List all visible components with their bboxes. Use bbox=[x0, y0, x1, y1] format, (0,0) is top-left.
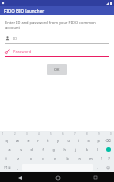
staticText: u bbox=[67, 138, 70, 143]
button[interactable]: i bbox=[73, 137, 83, 144]
other: Enter bbox=[106, 147, 111, 152]
button[interactable]: ?1① bbox=[1, 164, 13, 171]
staticText: b bbox=[66, 156, 69, 161]
staticText: 9 bbox=[98, 132, 100, 136]
button[interactable]: ! bbox=[97, 155, 105, 162]
staticText: k bbox=[86, 147, 88, 152]
staticText: t bbox=[47, 138, 49, 143]
staticText: h bbox=[63, 147, 66, 152]
staticText: f bbox=[42, 147, 44, 152]
staticText: y bbox=[57, 138, 59, 143]
staticText: e bbox=[27, 138, 30, 143]
button[interactable]: z bbox=[11, 155, 24, 162]
staticText: 0 bbox=[110, 132, 112, 136]
button[interactable]: s bbox=[15, 146, 26, 153]
staticText: 8 bbox=[86, 132, 88, 136]
staticText: x bbox=[30, 156, 32, 161]
staticText: n bbox=[78, 156, 81, 161]
button[interactable]: p bbox=[93, 137, 103, 144]
button[interactable]: d bbox=[26, 146, 37, 153]
button[interactable]: ⇧ bbox=[1, 155, 11, 162]
staticText: ?1① bbox=[4, 165, 11, 170]
staticText: m bbox=[89, 156, 93, 161]
staticText: ⌫ bbox=[105, 139, 111, 143]
staticText: 2 bbox=[14, 132, 16, 136]
staticText: , bbox=[17, 165, 18, 170]
button[interactable]: w bbox=[12, 137, 23, 144]
button[interactable]: q bbox=[1, 137, 12, 144]
button[interactable]: j bbox=[70, 146, 81, 153]
button[interactable]: , bbox=[13, 164, 22, 171]
button[interactable]: o bbox=[83, 137, 93, 144]
staticText: Enter ID and password from your FIDO com… bbox=[5, 20, 109, 30]
button[interactable]: OK bbox=[47, 64, 67, 75]
button[interactable]: b bbox=[61, 155, 73, 162]
staticText: 6 bbox=[62, 132, 64, 136]
button[interactable]: c bbox=[37, 155, 49, 162]
other: Password bbox=[5, 49, 10, 53]
staticText: d bbox=[30, 147, 33, 152]
button[interactable]: Recents bbox=[91, 173, 100, 182]
button[interactable]: e bbox=[23, 137, 33, 144]
staticText: . bbox=[97, 165, 98, 170]
button[interactable]: Home bbox=[53, 173, 62, 182]
staticText: o bbox=[87, 138, 90, 143]
staticText: j bbox=[75, 147, 76, 152]
staticText: r bbox=[37, 138, 39, 143]
staticText: 3 bbox=[26, 132, 28, 136]
button[interactable]: User ID bbox=[5, 36, 109, 44]
staticText: q bbox=[5, 138, 8, 143]
button[interactable]: Password bbox=[5, 49, 109, 57]
button[interactable]: Back bbox=[15, 173, 24, 182]
staticText: ☺ bbox=[106, 166, 110, 170]
staticText: w bbox=[16, 138, 19, 143]
staticText: 1 bbox=[2, 132, 4, 136]
staticText: Password bbox=[13, 49, 32, 54]
button[interactable]: x bbox=[24, 155, 37, 162]
button[interactable]: a bbox=[3, 146, 15, 153]
staticText: OK bbox=[54, 67, 60, 72]
button[interactable]: h bbox=[59, 146, 70, 153]
button[interactable]: n bbox=[73, 155, 85, 162]
staticText: g bbox=[52, 147, 55, 152]
staticText: v bbox=[54, 156, 56, 161]
staticText: 5 bbox=[50, 132, 52, 136]
staticText: FIDO BIO launcher bbox=[4, 8, 45, 14]
button[interactable]: Enter bbox=[103, 146, 113, 153]
staticText: z bbox=[17, 156, 19, 161]
staticText: p bbox=[97, 138, 100, 143]
staticText: i bbox=[78, 138, 79, 143]
button[interactable]: ? bbox=[105, 155, 113, 162]
other: User ID bbox=[5, 36, 10, 40]
button[interactable]: f bbox=[37, 146, 48, 153]
button[interactable]: y bbox=[53, 137, 63, 144]
staticText: s bbox=[20, 147, 22, 152]
button[interactable]: u bbox=[63, 137, 73, 144]
staticText: ID bbox=[13, 36, 18, 41]
staticText: 7 bbox=[74, 132, 76, 136]
staticText: a bbox=[8, 147, 11, 152]
staticText: ⇧ bbox=[4, 157, 8, 161]
button[interactable]: r bbox=[33, 137, 43, 144]
staticText: 4 bbox=[38, 132, 40, 136]
button[interactable]: FIDO BIO launcher bbox=[0, 6, 114, 15]
button[interactable]: v bbox=[49, 155, 61, 162]
button[interactable]: ⌫ bbox=[103, 137, 113, 144]
button[interactable]: l bbox=[92, 146, 103, 153]
button[interactable]: ☺ bbox=[102, 164, 113, 171]
button[interactable]: t bbox=[43, 137, 53, 144]
staticText: l bbox=[97, 147, 98, 152]
button[interactable]: g bbox=[48, 146, 59, 153]
staticText: ? bbox=[108, 156, 110, 161]
staticText: ! bbox=[101, 156, 102, 161]
staticText: c bbox=[42, 156, 44, 161]
button[interactable]: k bbox=[81, 146, 92, 153]
button[interactable]: m bbox=[85, 155, 97, 162]
